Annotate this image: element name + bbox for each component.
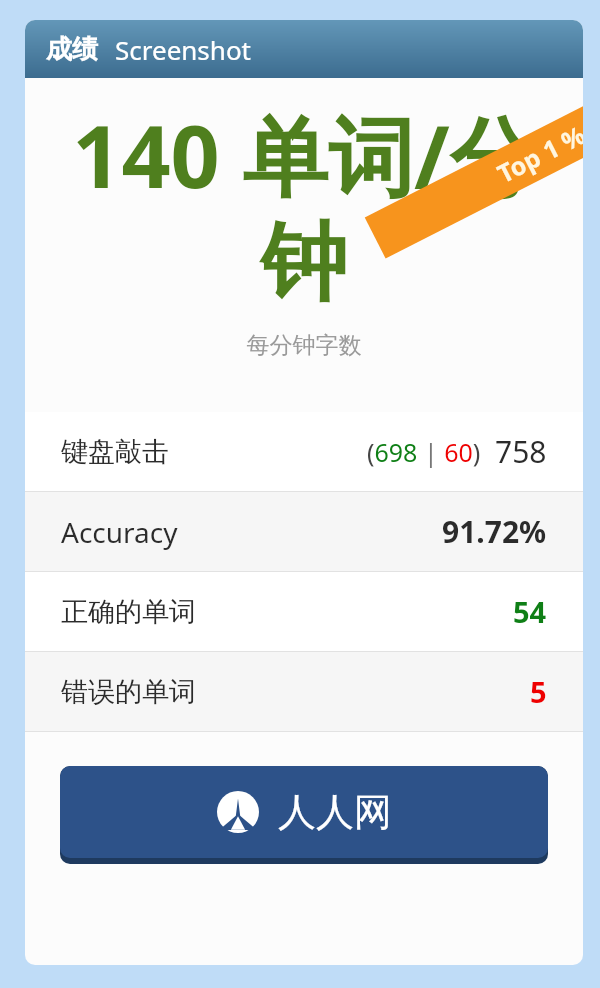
staticText: Accuracy	[61, 513, 178, 551]
staticText: Top 1 %	[491, 117, 583, 190]
button[interactable]: 人人网	[60, 766, 548, 864]
staticText: Screenshot	[115, 32, 252, 67]
button[interactable]: 正确的单词	[25, 572, 583, 651]
staticText: 正确的单词	[61, 595, 196, 629]
staticText: 54	[513, 592, 547, 631]
button[interactable]: Accuracy	[25, 492, 583, 571]
staticText: 758	[495, 431, 547, 472]
staticText: (698 | 60)	[367, 435, 481, 469]
staticText: 每分钟字数	[25, 331, 583, 360]
staticText: 键盘敲击	[61, 435, 169, 469]
other: 人人网	[217, 791, 259, 833]
staticText: 错误的单词	[61, 675, 196, 709]
staticText: 人人网	[278, 788, 392, 836]
button[interactable]: 键盘敲击	[25, 412, 583, 491]
staticText: 成绩	[46, 33, 98, 66]
staticText: 5	[530, 672, 547, 711]
staticText: 91.72%	[442, 511, 547, 552]
button[interactable]: 错误的单词	[25, 652, 583, 731]
staticText: 140 单词/分钟	[45, 96, 563, 317]
